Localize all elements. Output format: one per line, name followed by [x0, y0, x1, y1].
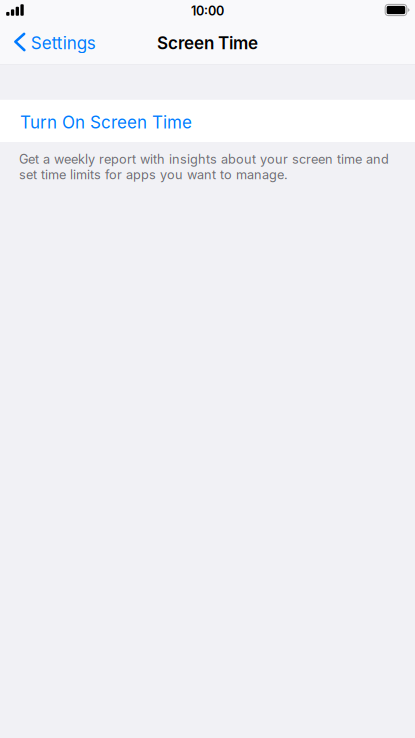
- staticText: Settings: [31, 33, 96, 53]
- staticText: Turn On Screen Time: [20, 112, 192, 133]
- button[interactable]: Turn On Screen Time: [0, 100, 415, 142]
- staticText: Get a weekly report with insights about …: [19, 151, 389, 182]
- button[interactable]: Settings: [0, 25, 104, 59]
- staticText: 10:00: [191, 3, 224, 19]
- staticText: Screen Time: [157, 33, 258, 53]
